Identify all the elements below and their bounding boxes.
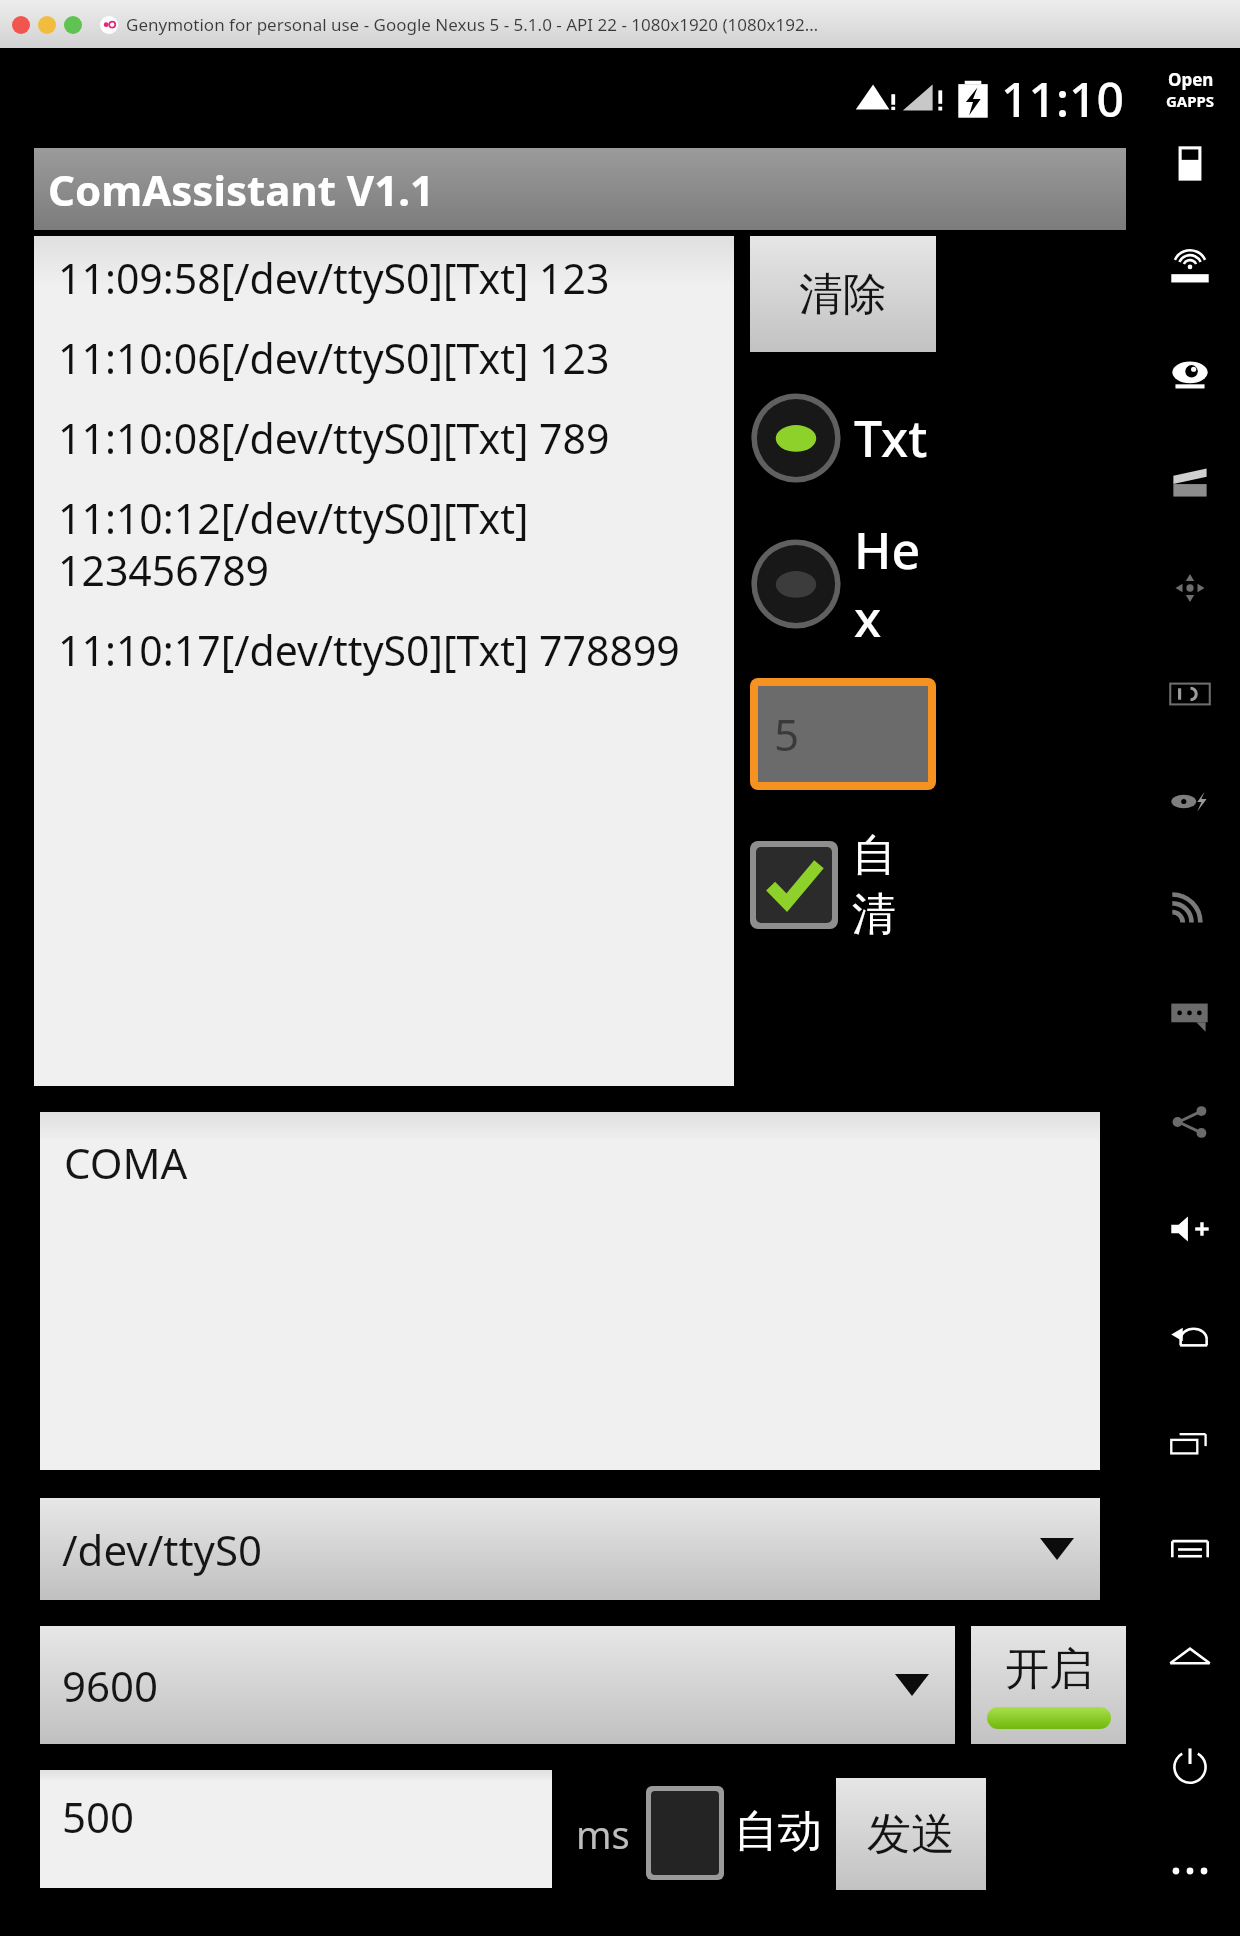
staticText: 11:10:08[/dev/ttyS0][Txt] 789 [58, 410, 610, 466]
staticText: 11:10:06[/dev/ttyS0][Txt] 123 [58, 330, 610, 386]
button[interactable]: /dev/ttyS0 [40, 1498, 1100, 1600]
button[interactable]: Back [1140, 1282, 1240, 1389]
staticText: 开启 [1005, 1642, 1093, 1697]
staticText: GAPPS [1166, 91, 1215, 111]
button[interactable]: 500 [40, 1770, 552, 1888]
button[interactable]: Share [1140, 1068, 1240, 1175]
button[interactable]: Network [1140, 854, 1240, 961]
button[interactable]: Camera [1140, 323, 1240, 429]
button[interactable]: Volume up [1140, 1175, 1240, 1282]
button[interactable]: 9600 [40, 1626, 955, 1744]
button[interactable]: 5 [758, 686, 928, 782]
button[interactable]: COMA [40, 1112, 1100, 1470]
button[interactable]: Hex [750, 516, 936, 652]
button[interactable]: 自清 [750, 828, 936, 942]
button[interactable]: Identifiers [1140, 641, 1240, 747]
button[interactable]: Auto send checkbox [651, 1791, 719, 1875]
button[interactable]: Menu [1140, 1496, 1240, 1603]
staticText: 发送 [867, 1807, 955, 1862]
staticText: 清除 [799, 267, 887, 322]
button[interactable]: Messages [1140, 961, 1240, 1068]
staticText: /dev/ttyS0 [62, 1521, 263, 1578]
staticText: 11:10:17[/dev/ttyS0][Txt] 778899 [58, 622, 680, 678]
staticText: 11:09:58[/dev/ttyS0][Txt] 123 [58, 250, 610, 306]
staticText: 11:10 [1001, 66, 1124, 131]
staticText: COMA [64, 1134, 188, 1191]
button[interactable]: GPS [1140, 217, 1240, 323]
button[interactable]: Recents [1140, 1389, 1240, 1496]
button[interactable]: 开启 [971, 1626, 1126, 1744]
button[interactable]: Power [1140, 1710, 1240, 1817]
staticText: Hex [854, 516, 936, 652]
staticText: Open [1168, 68, 1214, 91]
staticText: 5 [774, 704, 800, 764]
staticText: Txt [854, 404, 928, 472]
staticText: 9600 [62, 1657, 159, 1714]
button[interactable]: Disk IO [1140, 747, 1240, 854]
button[interactable]: Record video [1140, 429, 1240, 535]
button[interactable]: 清除 [750, 236, 936, 352]
button[interactable]: 发送 [836, 1778, 986, 1890]
staticText: ms [576, 1808, 630, 1860]
button[interactable]: Txt [750, 392, 928, 484]
staticText: ComAssistant V1.1 [48, 161, 435, 218]
button[interactable]: Home [1140, 1603, 1240, 1710]
button[interactable]: D-pad [1140, 535, 1240, 641]
button[interactable]: Battery [1140, 111, 1240, 217]
staticText: 自清 [852, 828, 936, 942]
staticText: Genymotion for personal use - Google Nex… [126, 13, 819, 36]
button[interactable]: More options [1140, 1817, 1240, 1924]
staticText: 自动 [734, 1804, 822, 1859]
staticText: 11:10:12[/dev/ttyS0][Txt] 123456789 [58, 490, 529, 598]
button[interactable]: 11:09:58[/dev/ttyS0][Txt] 123 [34, 236, 734, 1086]
staticText: 500 [62, 1788, 135, 1845]
